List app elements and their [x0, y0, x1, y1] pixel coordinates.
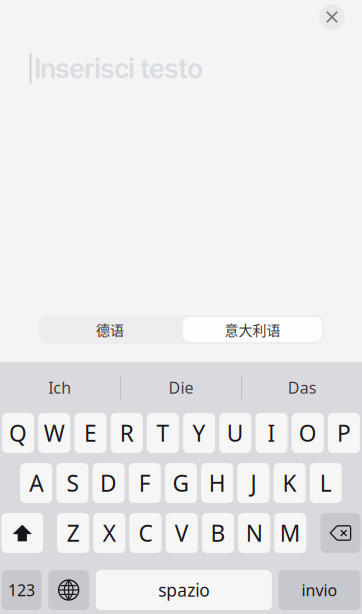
- button[interactable]: T: [147, 413, 179, 453]
- button[interactable]: spazio: [96, 570, 272, 610]
- staticText: 德语: [96, 319, 124, 340]
- button[interactable]: Close: [319, 4, 345, 30]
- button[interactable]: E: [74, 413, 106, 453]
- button[interactable]: V: [166, 513, 198, 553]
- button[interactable]: Shift: [2, 513, 43, 553]
- button[interactable]: D: [93, 463, 125, 503]
- button[interactable]: P: [328, 413, 360, 453]
- staticText: Die: [168, 377, 193, 398]
- button[interactable]: W: [38, 413, 70, 453]
- staticText: T: [156, 418, 169, 448]
- staticText: P: [337, 418, 351, 448]
- staticText: Inserisci testo: [34, 52, 202, 85]
- button[interactable]: C: [130, 513, 162, 553]
- staticText: spazio: [158, 578, 209, 601]
- staticText: Q: [9, 418, 27, 448]
- button[interactable]: invio: [278, 570, 360, 610]
- button[interactable]: R: [111, 413, 143, 453]
- staticText: Z: [67, 518, 80, 548]
- button[interactable]: Ich: [0, 362, 120, 413]
- button[interactable]: H: [201, 463, 233, 503]
- button[interactable]: I: [255, 413, 287, 453]
- staticText: B: [210, 518, 225, 548]
- button[interactable]: Q: [2, 413, 34, 453]
- button[interactable]: Next keyboard: [48, 570, 89, 610]
- button[interactable]: L: [310, 463, 342, 503]
- button[interactable]: K: [274, 463, 306, 503]
- staticText: E: [84, 418, 97, 448]
- staticText: K: [283, 468, 297, 498]
- button[interactable]: S: [56, 463, 88, 503]
- staticText: V: [175, 518, 189, 548]
- staticText: M: [280, 518, 301, 548]
- button[interactable]: 意大利语: [181, 315, 324, 344]
- button[interactable]: Das: [242, 362, 362, 413]
- staticText: G: [172, 468, 189, 498]
- staticText: 123: [8, 579, 35, 601]
- button[interactable]: 123: [2, 570, 42, 610]
- button[interactable]: M: [274, 513, 306, 553]
- button[interactable]: Die: [121, 362, 241, 413]
- button[interactable]: X: [93, 513, 125, 553]
- button[interactable]: B: [202, 513, 234, 553]
- staticText: F: [139, 468, 151, 498]
- staticText: A: [29, 468, 43, 498]
- button[interactable]: Z: [57, 513, 89, 553]
- staticText: C: [139, 518, 153, 548]
- staticText: J: [250, 468, 256, 498]
- staticText: R: [120, 418, 134, 448]
- staticText: Y: [193, 418, 206, 448]
- button[interactable]: Y: [183, 413, 215, 453]
- staticText: S: [66, 468, 78, 498]
- button[interactable]: U: [219, 413, 251, 453]
- staticText: X: [103, 518, 116, 548]
- staticText: H: [209, 468, 226, 498]
- staticText: W: [44, 418, 65, 448]
- staticText: O: [299, 418, 317, 448]
- button[interactable]: J: [237, 463, 269, 503]
- staticText: D: [100, 468, 117, 498]
- button[interactable]: 德语: [39, 315, 181, 344]
- staticText: L: [320, 468, 332, 498]
- staticText: U: [227, 418, 244, 448]
- staticText: Das: [288, 377, 317, 398]
- button[interactable]: A: [20, 463, 52, 503]
- staticText: N: [246, 518, 263, 548]
- button[interactable]: G: [165, 463, 197, 503]
- button[interactable]: O: [292, 413, 324, 453]
- button[interactable]: F: [129, 463, 161, 503]
- staticText: invio: [301, 579, 337, 601]
- staticText: 意大利语: [224, 319, 280, 340]
- button[interactable]: N: [238, 513, 270, 553]
- staticText: Ich: [48, 377, 71, 398]
- button[interactable]: Delete: [320, 513, 360, 553]
- staticText: I: [267, 418, 275, 448]
